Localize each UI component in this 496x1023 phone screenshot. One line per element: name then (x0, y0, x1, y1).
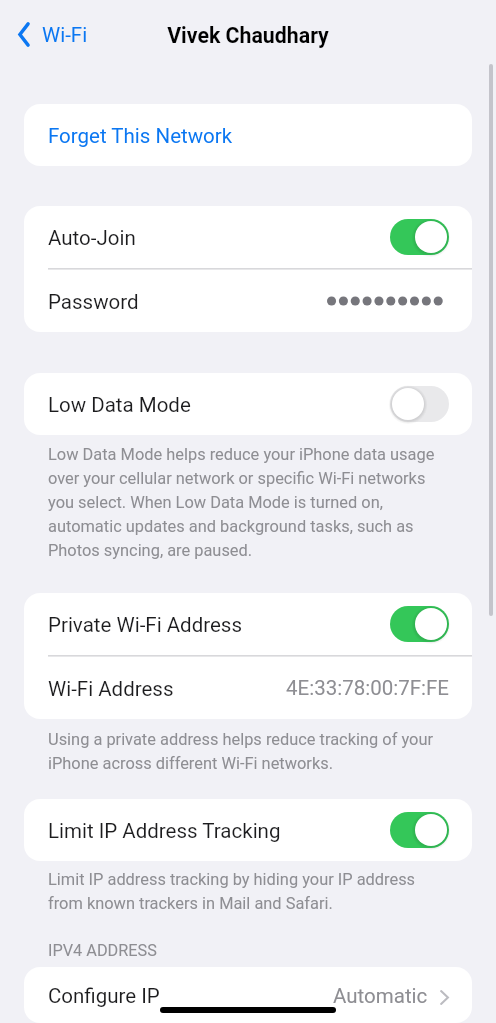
button[interactable]: Low Data Mode toggle, off (390, 386, 449, 422)
staticText: Forget This Network (48, 124, 233, 148)
button[interactable]: Forget This Network (24, 104, 472, 166)
staticText: Wi-Fi (42, 23, 88, 47)
button[interactable]: Private Wi-Fi Address toggle, on (390, 606, 449, 642)
staticText: Password (48, 290, 139, 314)
button[interactable]: Wi-Fi Address (24, 657, 472, 719)
staticText: Auto-Join (48, 226, 136, 250)
button[interactable]: Limit IP Address Tracking (24, 799, 472, 861)
button[interactable]: Low Data Mode (24, 373, 472, 435)
staticText: Vivek Chaudhary (167, 23, 329, 48)
button[interactable]: Password (24, 270, 472, 332)
staticText: Automatic (333, 984, 428, 1008)
button[interactable]: Auto-Join toggle, on (390, 219, 449, 255)
button[interactable]: Private Wi-Fi Address (24, 593, 472, 655)
staticText: Limit IP Address Tracking (48, 819, 281, 843)
button[interactable]: Back to Wi-Fi (0, 14, 100, 55)
button[interactable]: Limit IP Address Tracking toggle, on (390, 812, 449, 848)
staticText: Wi-Fi Address (48, 677, 174, 701)
staticText: Using a private address helps reduce tra… (48, 730, 450, 773)
staticText: Limit IP address tracking by hiding your… (48, 870, 450, 913)
staticText: Configure IP (48, 984, 160, 1008)
button[interactable]: Configure IP (24, 967, 472, 1023)
button[interactable]: Auto-Join (24, 206, 472, 268)
staticText: Low Data Mode helps reduce your iPhone d… (48, 445, 450, 560)
staticText: Private Wi-Fi Address (48, 613, 242, 637)
staticText: IPV4 ADDRESS (48, 941, 157, 960)
staticText: Low Data Mode (48, 393, 191, 417)
staticText: 4E:33:78:00:7F:FE (286, 676, 449, 700)
